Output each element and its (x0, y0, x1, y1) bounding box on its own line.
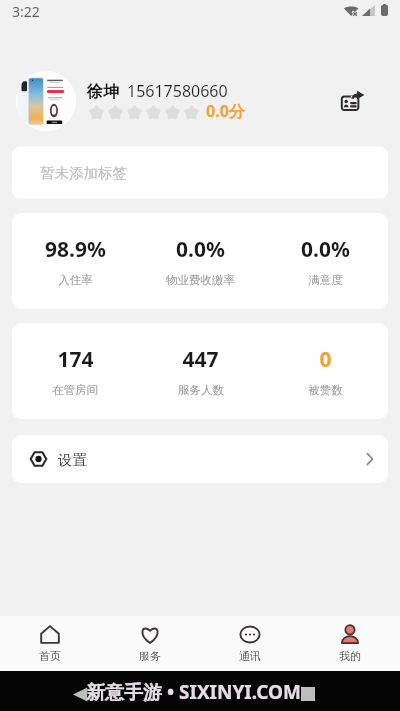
button[interactable]: Share contact card (331, 80, 373, 122)
staticText: 0.0% (176, 235, 225, 264)
other: Back (73, 687, 88, 702)
staticText: 新意手游 • SIXINYI.COM (86, 679, 301, 705)
button[interactable]: 首页 (0, 616, 100, 663)
staticText: 3:22 (12, 2, 40, 21)
staticText: 通讯 (239, 649, 261, 663)
staticText: 入住率 (58, 273, 93, 287)
staticText: 我的 (339, 649, 361, 663)
button[interactable]: 我的 (300, 616, 400, 663)
staticText: 0.0分 (206, 100, 245, 122)
button[interactable]: 447 (138, 345, 263, 397)
staticText: 设置 (58, 451, 87, 469)
button[interactable]: 服务 (100, 616, 200, 663)
button[interactable]: 设置 (12, 435, 388, 483)
button[interactable]: 0 (263, 345, 388, 397)
button[interactable]: 通讯 (200, 616, 300, 663)
staticText: 0 (319, 345, 332, 374)
staticText: 15617580660 (127, 80, 228, 102)
staticText: 98.9% (45, 235, 106, 264)
staticText: 徐坤 (87, 82, 119, 102)
staticText: 物业费收缴率 (166, 273, 235, 287)
staticText: 174 (57, 345, 94, 374)
button[interactable]: 174 (12, 345, 138, 397)
staticText: 0.0% (301, 235, 350, 264)
staticText: 447 (182, 345, 219, 374)
button[interactable]: 0.0% (138, 235, 263, 287)
staticText: 服务 (139, 649, 161, 663)
staticText: 满意度 (308, 273, 343, 287)
staticText: 服务人数 (178, 383, 224, 397)
staticText: 首页 (39, 649, 61, 663)
staticText: 暂未添加标签 (40, 164, 127, 182)
staticText: 在管房间 (52, 383, 98, 397)
button[interactable]: 暂未添加标签 (12, 146, 388, 199)
button[interactable]: 0.0% (263, 235, 388, 287)
staticText: 被赞数 (308, 383, 343, 397)
button[interactable]: 98.9% (12, 235, 138, 287)
button[interactable] (16, 71, 76, 131)
